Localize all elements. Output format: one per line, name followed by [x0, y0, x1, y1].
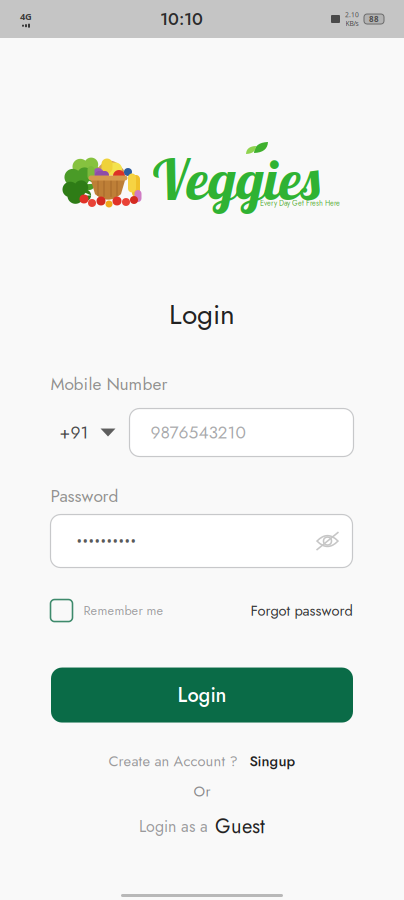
- staticText: Every Day Get Fresh Here: [260, 198, 340, 209]
- button[interactable]: Singup: [249, 751, 295, 772]
- button[interactable]: Show password: [310, 519, 344, 563]
- staticText: 2.10: [345, 10, 359, 19]
- staticText: KB/s: [345, 19, 358, 28]
- button[interactable]: +91: [50, 408, 129, 456]
- staticText: Veggies: [150, 144, 323, 214]
- staticText: Forgot password: [250, 600, 352, 621]
- staticText: Login: [169, 294, 235, 334]
- staticText: Or: [193, 781, 210, 802]
- button[interactable]: Remember me: [50, 600, 163, 622]
- staticText: 4G: [20, 10, 32, 23]
- staticText: +91: [59, 420, 88, 445]
- staticText: Singup: [249, 751, 295, 772]
- staticText: 88: [369, 14, 379, 24]
- staticText: Guest: [215, 812, 265, 841]
- staticText: 9876543210: [150, 420, 245, 445]
- button[interactable]: Forgot password: [250, 600, 352, 621]
- staticText: 10:10: [160, 6, 203, 31]
- staticText: Login: [177, 681, 226, 709]
- staticText: Create an Account ?: [108, 751, 237, 772]
- staticText: Password: [50, 483, 118, 508]
- button[interactable]: Login: [51, 668, 353, 723]
- staticText: Login as a: [139, 815, 208, 838]
- button[interactable]: Login as a: [139, 812, 265, 841]
- staticText: Mobile Number: [50, 371, 167, 396]
- staticText: Remember me: [83, 601, 163, 620]
- staticText: ••••••••••: [76, 531, 136, 551]
